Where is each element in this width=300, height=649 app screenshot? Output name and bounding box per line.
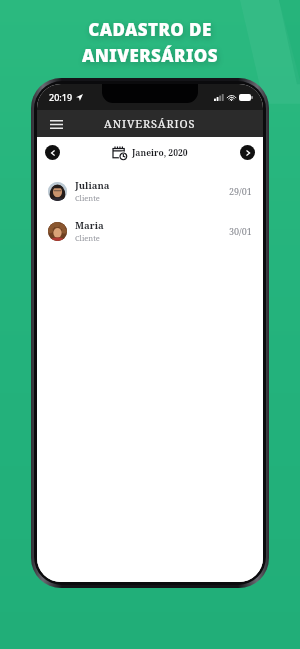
staticText: Maria (75, 219, 104, 232)
button[interactable]: Mês anterior (45, 145, 60, 160)
staticText: Cliente (75, 233, 100, 243)
button[interactable]: Maria (37, 218, 263, 244)
staticText: Cliente (75, 193, 100, 203)
staticText: 20:19 (49, 91, 73, 103)
button[interactable]: Menu (45, 113, 67, 135)
button[interactable]: Juliana (37, 178, 263, 204)
staticText: Juliana (75, 179, 110, 192)
staticText: 29/01 (229, 185, 252, 197)
staticText: ANIVERSÁRIOS (82, 44, 218, 67)
staticText: 30/01 (229, 225, 252, 237)
staticText: CADASTRO DE (88, 18, 212, 41)
button[interactable]: Próximo mês (240, 145, 255, 160)
staticText: ANIVERSÁRIOS (104, 116, 196, 131)
staticText: Janeiro, 2020 (132, 147, 188, 159)
